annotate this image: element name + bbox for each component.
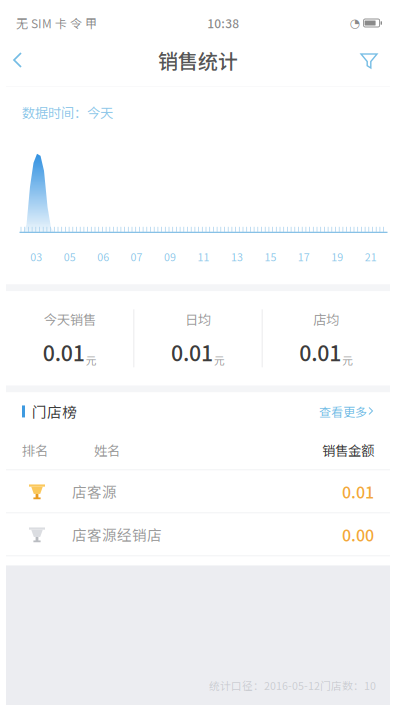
staticText: 元 [342, 352, 353, 367]
staticText: 0.00 [342, 523, 374, 546]
staticText: 门店榜 [32, 401, 77, 422]
staticText: 元 [86, 352, 97, 367]
staticText: 查看更多 [319, 403, 367, 420]
staticText: 06 [97, 249, 109, 264]
staticText: 店客源经销店 [72, 524, 162, 545]
staticText: 03 [30, 249, 42, 264]
staticText: 数据时间：今天 [22, 102, 113, 122]
staticText: 排名 [22, 440, 48, 460]
button[interactable]: Back [6, 45, 48, 75]
staticText: 0.01 [171, 337, 213, 367]
staticText: 0.01 [43, 337, 85, 367]
staticText: 07 [131, 249, 143, 264]
staticText: 11 [197, 249, 209, 264]
staticText: 17 [298, 249, 310, 264]
staticText: 姓名 [94, 440, 120, 460]
staticText: 元 [214, 352, 225, 367]
staticText: 0.01 [342, 480, 374, 503]
staticText: 无 SIM 卡 令 甲 [16, 14, 97, 32]
button[interactable]: 店客源 [6, 470, 390, 513]
button[interactable]: 查看更多 [319, 403, 390, 420]
staticText: 13 [231, 249, 243, 264]
staticText: 10:38 [207, 14, 239, 32]
staticText: ◔ [350, 16, 360, 30]
staticText: 09 [164, 249, 176, 264]
staticText: 销售统计 [158, 45, 238, 74]
staticText: 日均 [185, 309, 211, 329]
staticText: 统计口径：2016-05-12门店数：10 [209, 678, 376, 693]
staticText: 销售金额 [322, 440, 374, 460]
staticText: 店均 [313, 309, 339, 329]
staticText: 今天销售 [44, 309, 96, 329]
staticText: 15 [264, 249, 276, 264]
staticText: 05 [64, 249, 76, 264]
button[interactable]: Filter [350, 45, 390, 75]
staticText: 21 [365, 249, 377, 264]
button[interactable]: 店客源经销店 [6, 513, 390, 556]
staticText: 19 [331, 249, 343, 264]
staticText: 店客源 [72, 481, 117, 502]
staticText: 0.01 [299, 337, 341, 367]
